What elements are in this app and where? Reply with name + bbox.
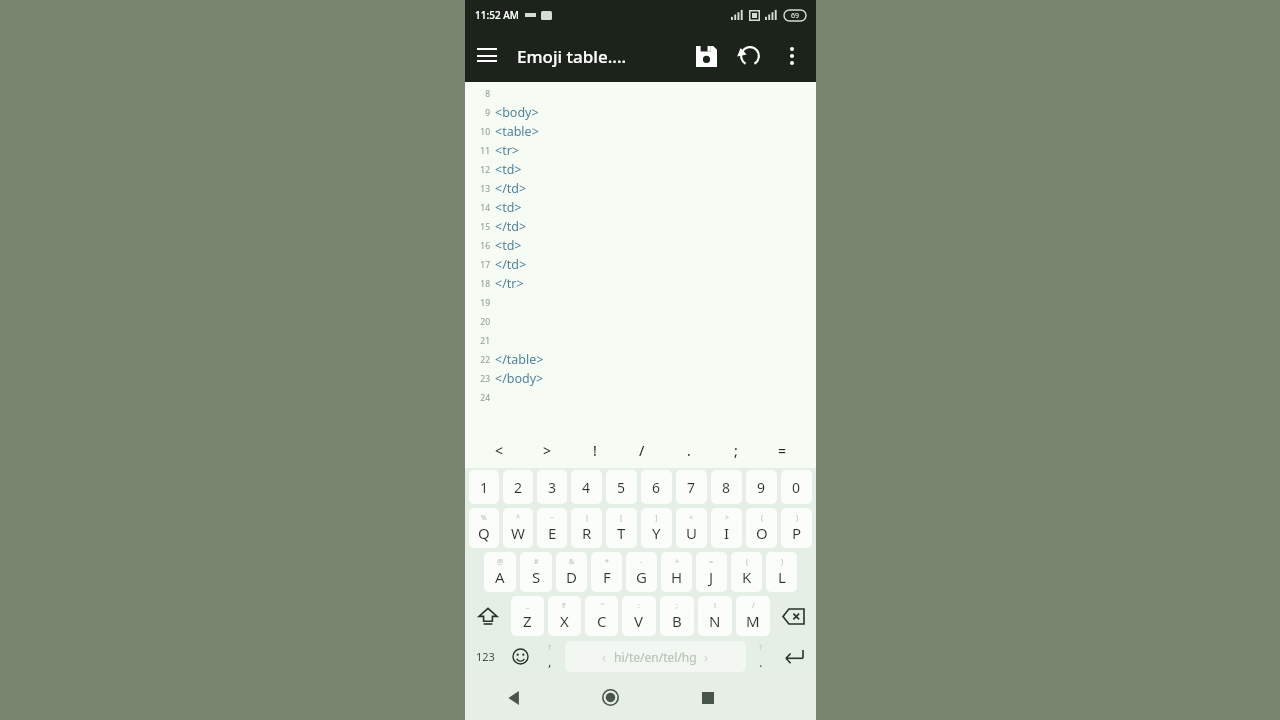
button[interactable]: ^ — [503, 508, 533, 548]
button[interactable]: ) — [766, 552, 797, 592]
button[interactable]: 9 — [746, 470, 777, 504]
button[interactable]: % — [469, 508, 499, 548]
button[interactable]: : — [622, 596, 656, 636]
button[interactable]: 7 — [676, 470, 707, 504]
staticText: > — [725, 513, 730, 523]
staticText: ‹ — [602, 648, 607, 666]
staticText: : — [638, 601, 640, 611]
staticText: 19 — [480, 297, 490, 309]
button[interactable]: # — [520, 552, 552, 592]
button[interactable]: ; — [712, 432, 759, 468]
button[interactable]: 0 — [781, 470, 812, 504]
staticText: 17 — [480, 259, 490, 271]
button[interactable]: Undo — [728, 34, 772, 78]
button[interactable]: ₹ — [548, 596, 581, 636]
staticText: M — [746, 611, 760, 631]
staticText: 1 — [480, 478, 489, 497]
button[interactable]: ! — [698, 596, 732, 636]
button[interactable]: Menu — [465, 34, 509, 78]
button[interactable]: Backspace — [772, 594, 814, 638]
staticText: " — [601, 601, 604, 611]
button[interactable]: - — [626, 552, 657, 592]
button[interactable]: ; — [660, 596, 694, 636]
button[interactable]: Save — [684, 34, 728, 78]
staticText: / — [639, 441, 645, 460]
button[interactable]: Recent apps — [659, 675, 757, 720]
button[interactable]: Emoji — [503, 638, 537, 675]
staticText: W — [511, 523, 525, 543]
button[interactable]: / — [618, 432, 665, 468]
staticText: </tr> — [495, 275, 524, 292]
button[interactable]: Back — [465, 675, 562, 720]
staticText: </body> — [495, 370, 544, 387]
button[interactable]: * — [591, 552, 622, 592]
staticText: 11 — [480, 145, 490, 157]
button[interactable]: More options — [772, 36, 812, 76]
button[interactable]: " — [585, 596, 618, 636]
staticText: 12 — [480, 164, 490, 176]
button[interactable]: = — [696, 552, 727, 592]
staticText: K — [742, 567, 752, 587]
button[interactable]: | — [571, 508, 602, 548]
button[interactable]: > — [711, 508, 742, 548]
staticText: X — [560, 611, 569, 631]
button[interactable]: ] — [641, 508, 672, 548]
button[interactable]: > — [523, 432, 571, 468]
staticText: J — [709, 567, 714, 587]
button[interactable]: 2 — [503, 470, 533, 504]
button[interactable]: 3 — [537, 470, 567, 504]
staticText: 123 — [476, 649, 495, 664]
staticText: & — [569, 557, 575, 567]
button[interactable]: 1 — [469, 470, 499, 504]
staticText: P — [792, 523, 802, 543]
staticText: <td> — [495, 237, 522, 254]
button[interactable]: _ — [511, 596, 544, 636]
staticText: ) — [796, 513, 799, 523]
staticText: hi/te/en/tel/hg — [614, 649, 697, 665]
button[interactable]: & — [556, 552, 587, 592]
staticText: I — [724, 523, 730, 543]
button[interactable]: 4 — [571, 470, 602, 504]
button[interactable]: < — [475, 432, 523, 468]
staticText: </td> — [495, 180, 527, 197]
staticText: Y — [652, 523, 661, 543]
staticText: L — [778, 567, 786, 587]
staticText: / — [752, 601, 755, 611]
staticText: C — [597, 611, 607, 631]
button[interactable]: 8 — [711, 470, 742, 504]
staticText: 7 — [687, 478, 696, 497]
button[interactable]: 123 — [467, 638, 503, 675]
button[interactable]: + — [661, 552, 692, 592]
button[interactable]: Home — [562, 675, 659, 720]
button[interactable]: . — [665, 432, 712, 468]
staticText: 10 — [480, 126, 490, 138]
button[interactable]: ? — [748, 638, 774, 675]
staticText: < — [689, 513, 694, 523]
button[interactable]: ( — [746, 508, 777, 548]
staticText: + — [675, 557, 680, 567]
button[interactable]: ↑ — [537, 638, 563, 675]
button[interactable]: < — [676, 508, 707, 548]
staticText: </table> — [495, 351, 544, 368]
staticText: ↑ — [547, 644, 553, 652]
button[interactable]: Space — [565, 641, 746, 672]
staticText: 15 — [480, 221, 490, 233]
staticText: 3 — [548, 478, 557, 497]
button[interactable]: ( — [731, 552, 762, 592]
button[interactable]: ) — [781, 508, 812, 548]
staticText: 0 — [792, 478, 801, 497]
button[interactable]: 5 — [606, 470, 637, 504]
staticText: <td> — [495, 199, 522, 216]
staticText: <td> — [495, 161, 522, 178]
button[interactable]: 6 — [641, 470, 672, 504]
button[interactable]: Enter — [774, 638, 814, 675]
staticText: N — [709, 611, 721, 631]
button[interactable]: [ — [606, 508, 637, 548]
button[interactable]: = — [759, 432, 806, 468]
button[interactable]: / — [736, 596, 770, 636]
button[interactable]: @ — [484, 552, 516, 592]
staticText: = — [709, 557, 714, 567]
button[interactable]: ! — [571, 432, 618, 468]
button[interactable]: Shift — [467, 594, 509, 638]
button[interactable]: ~ — [537, 508, 567, 548]
